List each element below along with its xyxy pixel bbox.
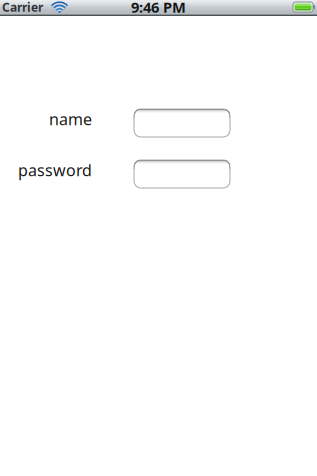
staticText: 9:46 PM <box>131 0 186 17</box>
button[interactable]: password field <box>134 160 230 188</box>
button[interactable]: name field <box>134 109 230 137</box>
staticText: name <box>49 108 92 130</box>
staticText: password <box>18 159 92 181</box>
staticText: Carrier <box>2 0 43 15</box>
